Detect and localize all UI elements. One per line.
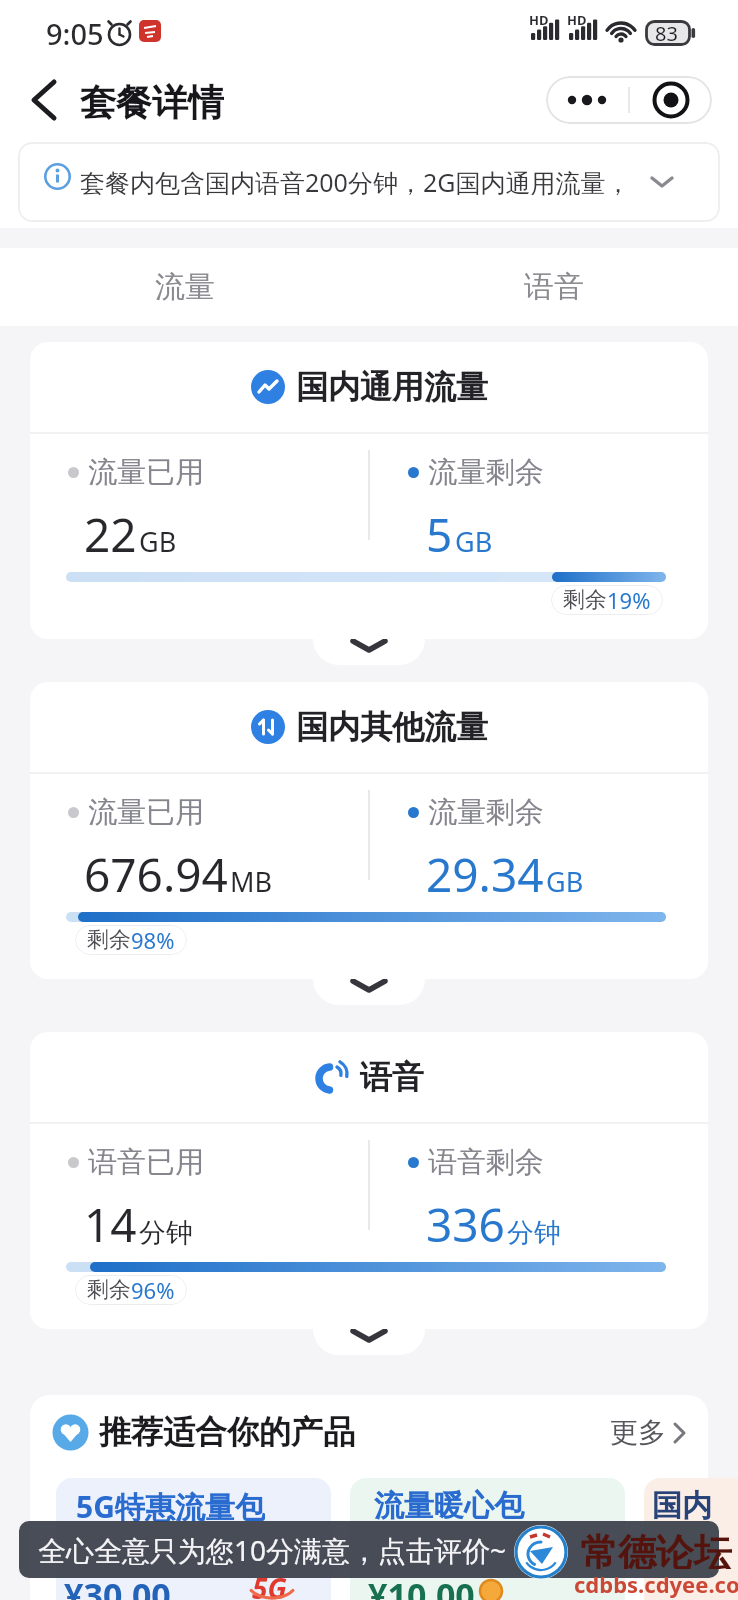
staticText: MB (230, 863, 273, 900)
staticText: GB (546, 863, 584, 900)
staticText: 336 (426, 1193, 505, 1256)
staticText: 套餐详情 (80, 80, 224, 120)
staticText: 98% (131, 925, 175, 955)
staticText: 国内其他流量 (296, 707, 488, 747)
button[interactable]: 语音 (369, 248, 738, 326)
staticText: 9:05 (46, 14, 104, 53)
staticText: 套餐内包含国内语音200分钟，2G国内通用流量，50… (80, 165, 665, 199)
staticText: 分钟 (139, 1216, 193, 1250)
staticText: GB (455, 523, 493, 560)
staticText: 语音 (524, 268, 584, 306)
button[interactable]: 套餐内包含国内语音200分钟，2G国内通用流量，50… (18, 142, 720, 222)
staticText: 流量剩余 (428, 454, 544, 490)
staticText: 流量 (155, 268, 215, 306)
staticText: 96% (131, 1275, 175, 1305)
staticText: 语音已用 (88, 1144, 204, 1180)
staticText: 剩余 (87, 1276, 131, 1304)
staticText: 全心全意只为您10分满意，点击评价~ (38, 1531, 507, 1569)
staticText: 676.94 (84, 843, 228, 906)
staticText: 国内 (652, 1487, 712, 1525)
staticText: 剩余 (563, 586, 607, 614)
button[interactable] (313, 639, 425, 665)
staticText: 流量已用 (88, 794, 204, 830)
staticText: 推荐适合你的产品 (99, 1412, 355, 1452)
staticText: 14 (84, 1193, 137, 1256)
staticText: 更多 (610, 1415, 666, 1450)
staticText: 流量剩余 (428, 794, 544, 830)
staticText: 语音 (360, 1057, 424, 1097)
staticText: 5G (252, 1569, 287, 1600)
staticText: 22 (84, 503, 137, 566)
staticText: 语音剩余 (428, 1144, 544, 1180)
staticText: 5 (426, 503, 453, 566)
staticText: 国内通用流量 (296, 367, 488, 407)
staticText: 剩余 (87, 926, 131, 954)
button[interactable] (313, 979, 425, 1005)
button[interactable]: 国内 (644, 1478, 738, 1600)
button[interactable] (16, 74, 68, 126)
button[interactable]: 流量暖心包 (350, 1478, 625, 1600)
staticText: HD (529, 11, 549, 29)
button[interactable] (546, 76, 629, 124)
button[interactable] (629, 76, 712, 124)
staticText: GB (139, 523, 177, 560)
button[interactable]: 流量 (0, 248, 369, 326)
button[interactable]: 5G特惠流量包 (56, 1478, 331, 1600)
staticText: 5G特惠流量包 (76, 1486, 265, 1526)
staticText: 83 (655, 20, 678, 47)
staticText: 流量已用 (88, 454, 204, 490)
staticText: 分钟 (507, 1216, 561, 1250)
staticText: 19% (607, 585, 651, 615)
button[interactable] (313, 1329, 425, 1355)
staticText: HD (567, 11, 587, 29)
staticText: 29.34 (426, 843, 544, 906)
staticText: ¥10.00 (368, 1572, 475, 1600)
staticText: cdbbs.cdyee.com (574, 1569, 738, 1599)
staticText: ¥30.00 (64, 1572, 171, 1600)
staticText: 常德论坛 (580, 1529, 732, 1569)
staticText: 流量暖心包 (374, 1487, 524, 1525)
button[interactable]: 更多 (596, 1405, 696, 1461)
